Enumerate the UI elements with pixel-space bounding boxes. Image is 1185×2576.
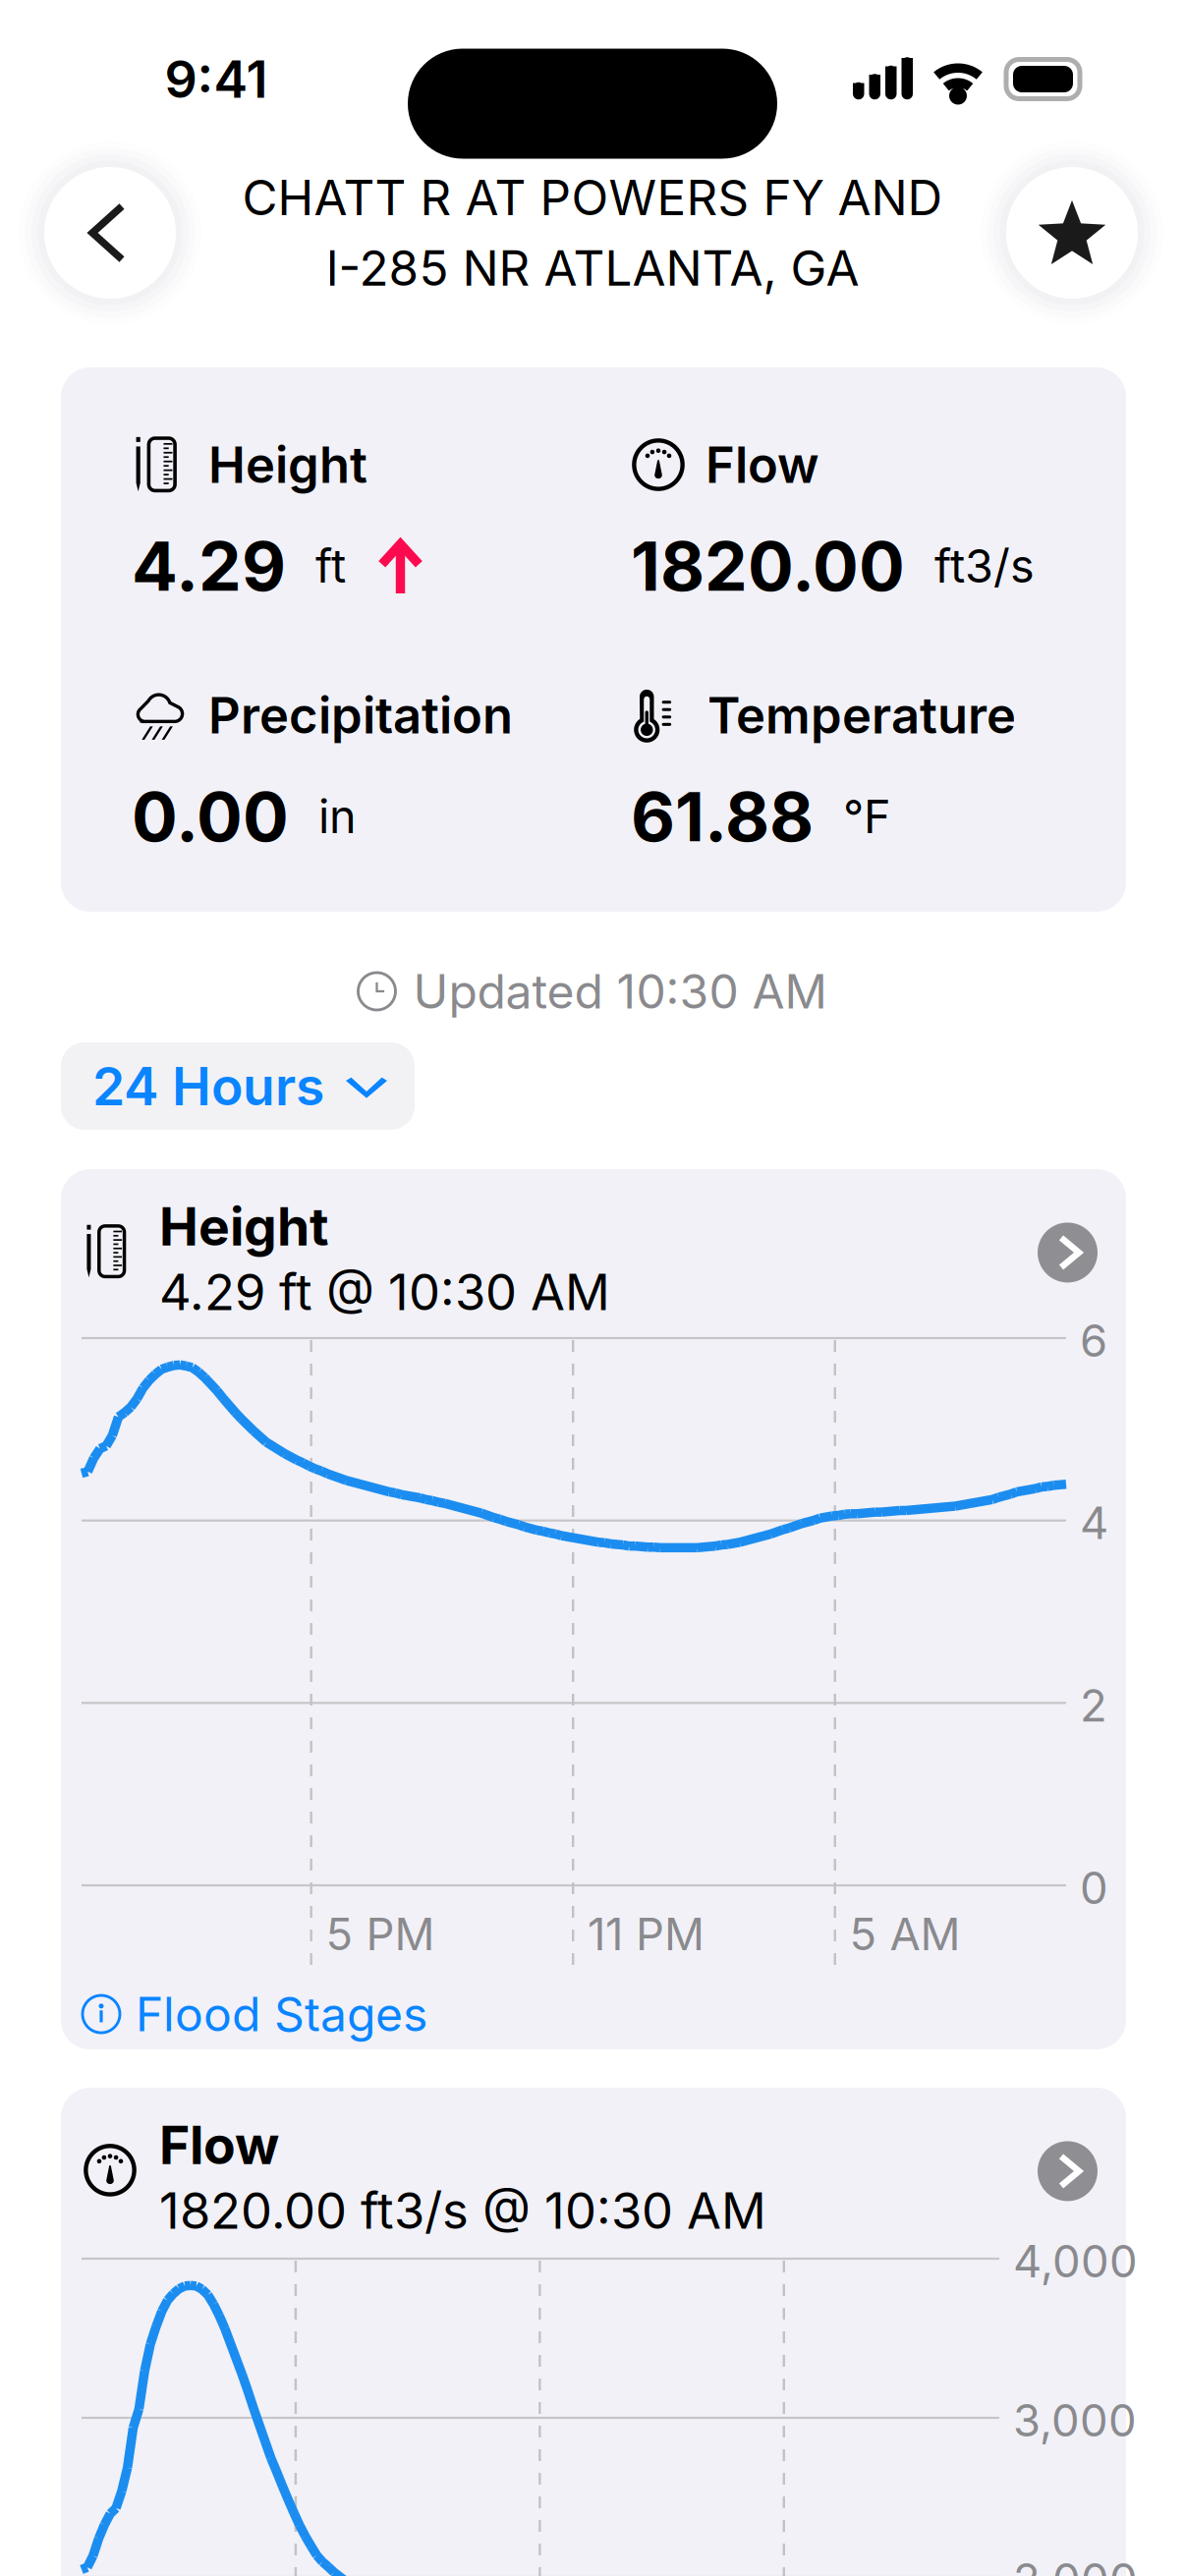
staticText: 0.00 [132, 775, 289, 858]
button[interactable]: 24 Hours [61, 1042, 415, 1130]
staticText: Height [208, 435, 367, 495]
staticText: 2,000 [1013, 2552, 1138, 2576]
staticText: ft3/s [934, 538, 1035, 594]
staticText: 4,000 [1013, 2234, 1138, 2288]
staticText: CHATT R AT POWERS FY AND [242, 168, 943, 227]
staticText: 9:41 [165, 48, 268, 110]
staticText: 4.29 ft @ 10:30 AM [159, 1262, 610, 1322]
staticText: 2 [1080, 1678, 1107, 1732]
staticText: in [318, 789, 357, 844]
staticText: 4.29 [132, 525, 286, 607]
staticText: 0 [1080, 1861, 1108, 1915]
staticText: I-285 NR ATLANTA, GA [326, 239, 859, 297]
staticText: Temperature [707, 685, 1016, 745]
staticText: 5 AM [849, 1907, 960, 1961]
staticText: 24 Hours [92, 1054, 324, 1118]
staticText: Precipitation [208, 685, 513, 745]
button[interactable]: Favourite [981, 141, 1163, 324]
staticText: 3,000 [1013, 2393, 1137, 2447]
staticText: Updated 10:30 AM [413, 963, 827, 1020]
staticText: ft [315, 538, 346, 594]
staticText: Flow [159, 2113, 279, 2177]
button[interactable]: Show Flow details [1038, 2141, 1098, 2213]
staticText: 61.88 [631, 775, 814, 858]
staticText: 11 PM [588, 1907, 705, 1961]
staticText: 5 PM [326, 1907, 435, 1961]
staticText: 6 [1080, 1314, 1107, 1367]
staticText: 1820.00 ft3/s @ 10:30 AM [159, 2181, 766, 2241]
button[interactable]: Show Height details [1038, 1223, 1098, 1294]
button[interactable]: Back [19, 141, 201, 324]
staticText: 1820.00 [631, 525, 905, 607]
button[interactable]: Flood Stages [61, 1974, 1126, 2054]
staticText: Height [159, 1195, 329, 1258]
staticText: °F [843, 789, 891, 844]
staticText: Flow [705, 435, 819, 495]
staticText: 4 [1080, 1496, 1108, 1550]
staticText: Flood Stages [136, 1986, 427, 2043]
